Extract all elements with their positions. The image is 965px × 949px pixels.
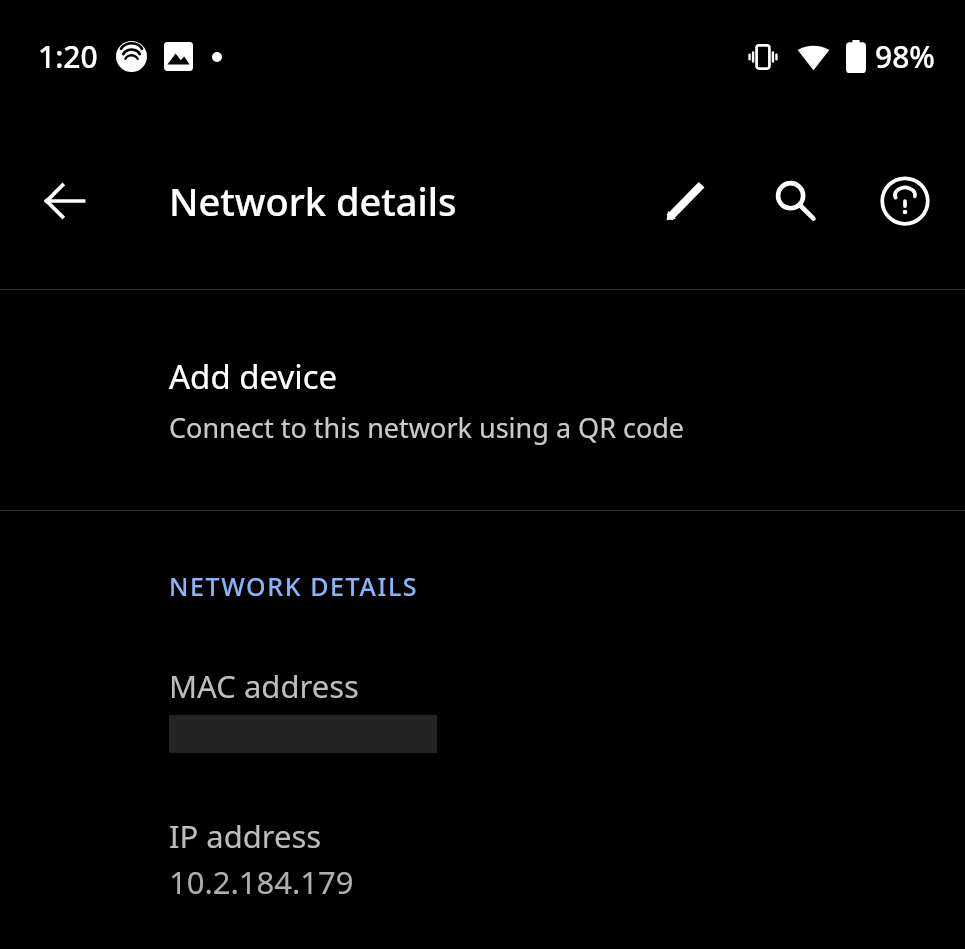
staticText: NETWORK DETAILS	[169, 569, 419, 603]
staticText: MAC address	[169, 665, 359, 707]
button[interactable]: Search	[753, 159, 837, 243]
button[interactable]: Add device	[0, 290, 965, 510]
staticText: IP address	[169, 815, 322, 857]
button[interactable]: Edit	[643, 159, 727, 243]
staticText: Connect to this network using a QR code	[169, 409, 685, 446]
staticText: 10.2.184.179	[169, 861, 354, 903]
staticText: 1:20	[38, 36, 98, 77]
staticText: 98%	[875, 36, 935, 77]
staticText: Network details	[169, 175, 457, 227]
button[interactable]: Help	[863, 159, 947, 243]
button[interactable]: Back	[24, 159, 108, 243]
staticText: Add device	[169, 354, 338, 399]
